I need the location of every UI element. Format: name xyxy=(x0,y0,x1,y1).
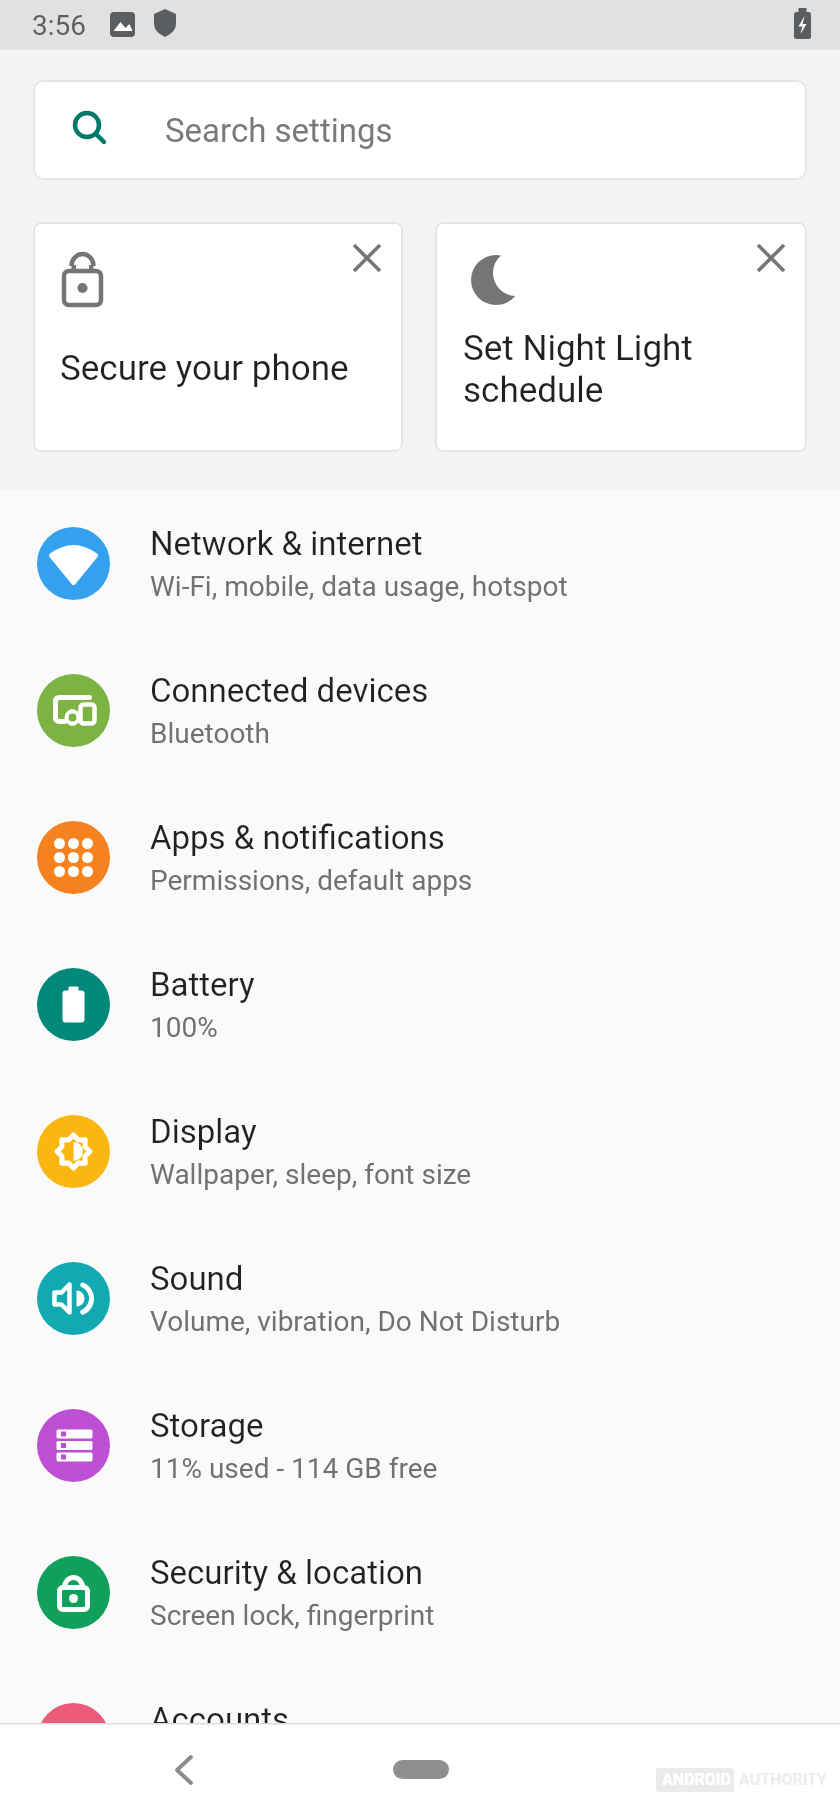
staticText: Battery xyxy=(150,965,255,1004)
staticText: Accounts xyxy=(150,1700,290,1739)
staticText: Email, calendar xyxy=(150,1746,340,1779)
button[interactable]: Search settings xyxy=(33,80,807,180)
button[interactable]: Accounts xyxy=(0,1666,840,1813)
staticText: Bluetooth xyxy=(150,717,270,750)
button[interactable] xyxy=(385,1752,455,1792)
staticText: Search settings xyxy=(165,111,393,150)
staticText: Permissions, default apps xyxy=(150,864,473,897)
button[interactable] xyxy=(170,1750,214,1794)
staticText: Storage xyxy=(150,1406,264,1445)
button[interactable]: Secure your phone xyxy=(33,222,403,452)
staticText: 3:56 xyxy=(32,9,86,42)
button[interactable]: Apps & notifications xyxy=(0,784,840,931)
staticText: AUTHORITY xyxy=(739,1770,828,1789)
staticText: 100% xyxy=(150,1011,218,1044)
staticText: Network & internet xyxy=(150,524,423,563)
staticText: Display xyxy=(150,1112,257,1151)
staticText: Connected devices xyxy=(150,671,429,710)
button[interactable]: Set Night Light schedule xyxy=(435,222,807,452)
staticText: Volume, vibration, Do Not Disturb xyxy=(150,1305,561,1338)
staticText: Set Night Light schedule xyxy=(463,328,693,411)
button[interactable]: Display xyxy=(0,1078,840,1225)
button[interactable]: Connected devices xyxy=(0,637,840,784)
staticText: Screen lock, fingerprint xyxy=(150,1599,435,1632)
button[interactable]: Storage xyxy=(0,1372,840,1519)
button[interactable]: Security & location xyxy=(0,1519,840,1666)
staticText: ANDROID xyxy=(662,1770,731,1789)
staticText: Sound xyxy=(150,1259,244,1298)
button[interactable]: Network & internet xyxy=(0,490,840,637)
staticText: Apps & notifications xyxy=(150,818,445,857)
staticText: Security & location xyxy=(150,1553,424,1592)
button[interactable]: Battery xyxy=(0,931,840,1078)
staticText: Wallpaper, sleep, font size xyxy=(150,1158,472,1191)
staticText: Wi-Fi, mobile, data usage, hotspot xyxy=(150,570,568,603)
staticText: 11% used - 114 GB free xyxy=(150,1452,438,1485)
button[interactable]: Sound xyxy=(0,1225,840,1372)
staticText: Secure your phone xyxy=(60,348,349,389)
